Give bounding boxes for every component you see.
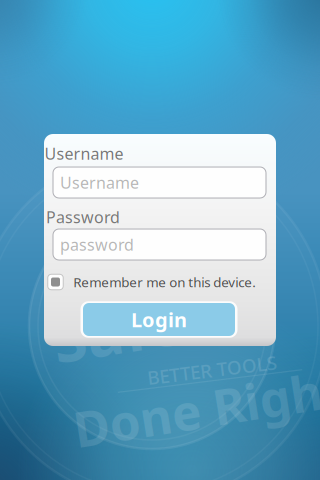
staticText: password [60,234,134,255]
staticText: BETTER TOOLS [147,358,277,382]
staticText: Done Right [72,375,320,441]
staticText: Safe [52,289,184,371]
staticText: Login [131,306,187,333]
button[interactable]: Remember me on this device. [53,272,261,292]
button[interactable]: Login [80,301,237,338]
button[interactable]: password [53,229,266,260]
button[interactable]: Username [53,167,266,198]
staticText: Username [60,172,139,193]
staticText: Remember me on this device. [73,273,256,291]
staticText: Password [46,206,120,228]
staticText: Username [44,143,123,164]
